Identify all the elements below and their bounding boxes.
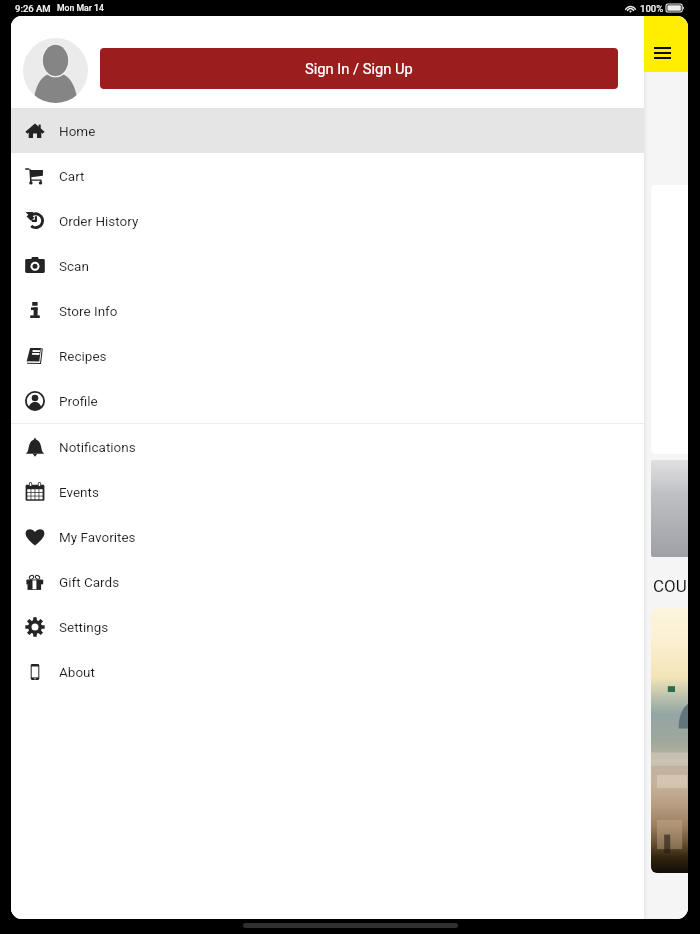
button[interactable]: Open navigation menu	[644, 16, 688, 72]
staticText: My Favorites	[59, 529, 136, 545]
staticText: Mon Mar 14	[57, 3, 104, 13]
button[interactable]: Cart	[11, 153, 644, 198]
button[interactable]: My Favorites	[11, 514, 644, 559]
staticText: Recipes	[59, 348, 107, 364]
button[interactable]: About	[11, 649, 644, 694]
button[interactable]: Events	[11, 469, 644, 514]
staticText: About	[59, 664, 95, 680]
staticText: Order History	[59, 213, 139, 229]
staticText: Gift Cards	[59, 574, 120, 590]
staticText: Scan	[59, 258, 89, 274]
staticText: 9:26 AM	[15, 3, 51, 14]
button[interactable]: Recipes	[11, 333, 644, 378]
button[interactable]: Profile	[11, 378, 644, 423]
button[interactable]: Notifications	[11, 424, 644, 469]
button[interactable]: Settings	[11, 604, 644, 649]
staticText: 100%	[640, 3, 664, 14]
button[interactable]: Order History	[11, 198, 644, 243]
button[interactable]: Sign In / Sign Up	[100, 48, 618, 89]
button[interactable]: Home	[11, 108, 644, 153]
button[interactable]: Scan	[11, 243, 644, 288]
button[interactable]: Gift Cards	[11, 559, 644, 604]
staticText: Profile	[59, 393, 98, 409]
staticText: Notifications	[59, 439, 136, 455]
staticText: Settings	[59, 619, 109, 635]
staticText: Cart	[59, 168, 85, 184]
button[interactable]: Store Info	[11, 288, 644, 333]
staticText: Store Info	[59, 303, 118, 319]
staticText: COUPONS	[653, 576, 688, 596]
staticText: Sign In / Sign Up	[305, 60, 413, 77]
staticText: Home	[59, 123, 96, 139]
staticText: Events	[59, 484, 99, 500]
